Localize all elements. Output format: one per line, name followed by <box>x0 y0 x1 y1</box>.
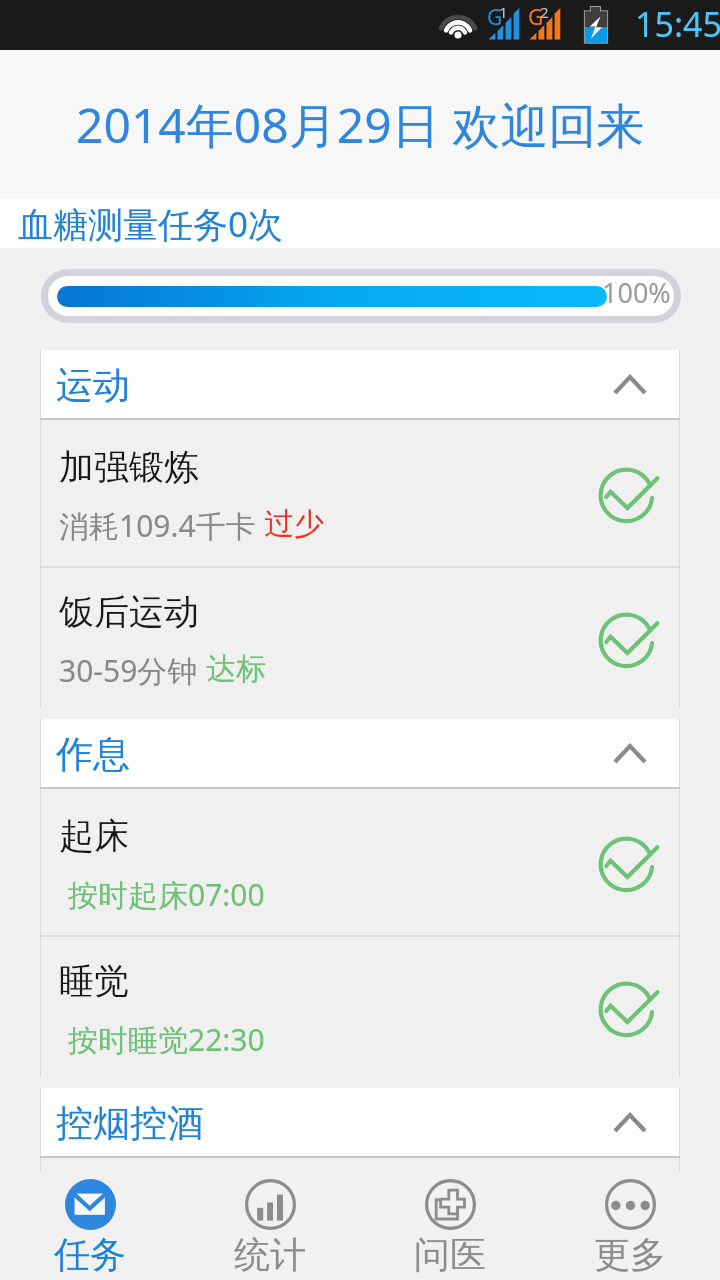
staticText: 睡觉 <box>59 959 129 1003</box>
other: 任务 <box>65 1179 116 1230</box>
staticText: 30-59分钟 <box>59 650 206 691</box>
staticText: 统计 <box>234 1232 306 1277</box>
button[interactable]: 统计 <box>180 1172 360 1280</box>
button[interactable]: 控烟控酒 <box>40 1088 680 1158</box>
staticText: 1 <box>499 2 508 22</box>
staticText: 作息 <box>56 731 130 778</box>
staticText: 15:45 <box>635 1 720 47</box>
button[interactable]: 更多 <box>540 1172 720 1280</box>
staticText: 按时睡觉22:30 <box>68 1019 265 1060</box>
other: 更多 <box>605 1179 656 1230</box>
staticText: 达标 <box>206 650 266 688</box>
staticText: 100% <box>602 274 671 311</box>
button[interactable] <box>40 1158 680 1280</box>
staticText: 过少 <box>264 505 324 543</box>
button[interactable]: 睡觉 <box>40 937 680 1077</box>
staticText: G <box>528 3 544 32</box>
button[interactable]: 问医 <box>360 1172 540 1280</box>
staticText: 更多 <box>594 1232 666 1277</box>
staticText: 起床 <box>59 814 129 858</box>
staticText: G <box>487 3 503 32</box>
staticText: 任务 <box>54 1232 126 1277</box>
other: 问医 <box>425 1179 476 1230</box>
button[interactable]: 起床 <box>40 789 680 935</box>
staticText: 控烟控酒 <box>56 1100 204 1147</box>
button[interactable]: 饭后运动 <box>40 568 680 708</box>
other: 统计 <box>245 1179 296 1230</box>
staticText: 2 <box>540 2 549 22</box>
staticText: 饭后运动 <box>59 590 199 634</box>
staticText: 运动 <box>56 362 130 409</box>
button[interactable]: 加强锻炼 <box>40 420 680 566</box>
staticText: 2014年08月29日 欢迎回来 <box>76 92 645 158</box>
staticText: 血糖测量任务0次 <box>18 200 284 248</box>
button[interactable]: 任务 <box>0 1172 180 1280</box>
button[interactable]: 运动 <box>40 350 680 420</box>
staticText: 按时起床07:00 <box>68 874 265 915</box>
button[interactable]: 作息 <box>40 719 680 789</box>
staticText: 加强锻炼 <box>59 445 199 489</box>
staticText: 消耗109.4千卡 <box>59 505 264 546</box>
staticText: 问医 <box>414 1232 486 1277</box>
